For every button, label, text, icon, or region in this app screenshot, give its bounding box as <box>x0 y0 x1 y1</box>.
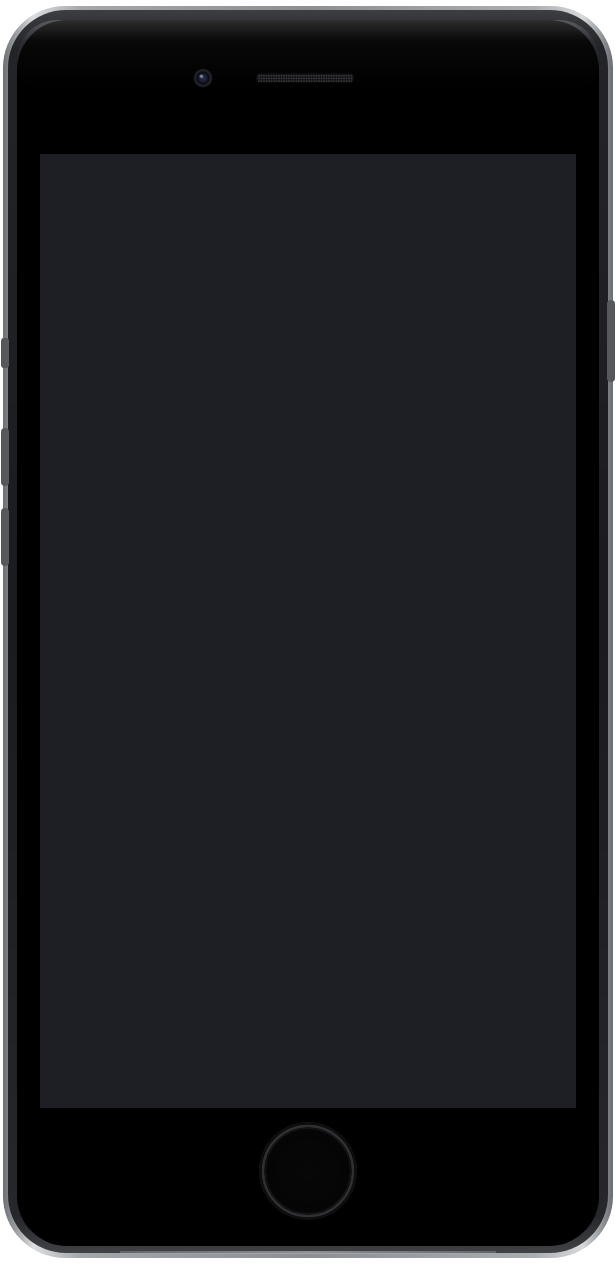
button[interactable]: Home <box>263 1126 353 1216</box>
button[interactable]: Volume up <box>0 428 16 486</box>
button[interactable]: Power <box>600 300 616 382</box>
button[interactable]: Volume down <box>0 508 16 566</box>
